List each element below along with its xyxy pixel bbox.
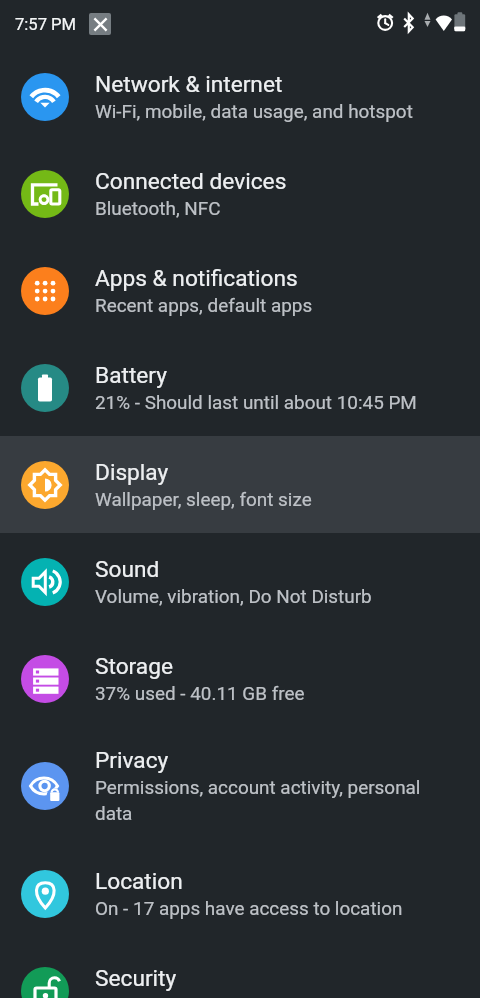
staticText: Storage: [95, 653, 173, 679]
staticText: On - 17 apps have access to location: [95, 894, 403, 920]
staticText: Location: [95, 868, 183, 894]
staticText: Volume, vibration, Do Not Disturb: [95, 582, 372, 608]
staticText: Sound: [95, 556, 160, 582]
staticText: Network & internet: [95, 71, 283, 97]
staticText: Display: [95, 459, 169, 485]
button[interactable]: Sound: [0, 533, 480, 630]
button[interactable]: Security: [0, 942, 480, 998]
staticText: Wi-Fi, mobile, data usage, and hotspot: [95, 97, 413, 123]
staticText: Recent apps, default apps: [95, 291, 313, 317]
staticText: 21% - Should last until about 10:45 PM: [95, 388, 417, 414]
staticText: 7:57 PM: [15, 15, 77, 34]
button[interactable]: Privacy: [0, 727, 480, 845]
staticText: Security: [95, 965, 177, 991]
button[interactable]: Location: [0, 845, 480, 942]
staticText: Connected devices: [95, 168, 287, 194]
staticText: Bluetooth, NFC: [95, 194, 221, 220]
button[interactable]: Display: [0, 436, 480, 533]
staticText: Apps & notifications: [95, 265, 298, 291]
button[interactable]: Battery: [0, 339, 480, 436]
staticText: 37% used - 40.11 GB free: [95, 679, 305, 705]
staticText: Permissions, account activity, personal …: [95, 773, 421, 825]
button[interactable]: Network & internet: [0, 48, 480, 145]
button[interactable]: Storage: [0, 630, 480, 727]
staticText: Battery: [95, 362, 167, 388]
staticText: Privacy: [95, 747, 169, 773]
button[interactable]: Apps & notifications: [0, 242, 480, 339]
staticText: Wallpaper, sleep, font size: [95, 485, 312, 511]
button[interactable]: Close: [89, 13, 111, 35]
button[interactable]: Connected devices: [0, 145, 480, 242]
